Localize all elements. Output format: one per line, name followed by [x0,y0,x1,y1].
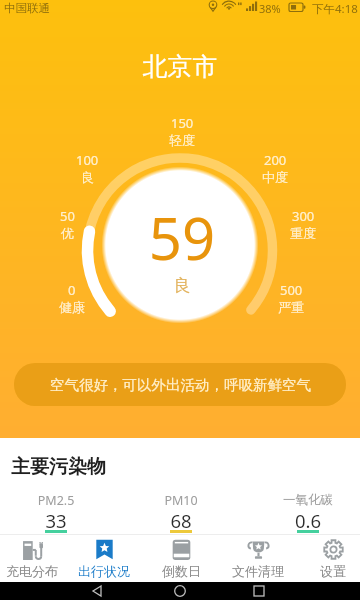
staticText: 出行状况 [78,563,130,579]
staticText: 中度 [262,169,288,185]
staticText: 严重 [278,299,304,315]
staticText: 38% [259,1,281,16]
staticText: 150 [171,114,194,132]
staticText: 500 [280,281,303,299]
staticText: 50 [60,207,75,225]
staticText: 0 [68,281,76,299]
button[interactable]: Countdown [145,534,217,582]
staticText: 北京市 [0,51,360,82]
staticText: 倒数日 [162,563,201,579]
staticText: PM10 [136,492,226,509]
button[interactable]: Charging stations [0,534,68,582]
button[interactable]: 空气很好，可以外出活动，呼吸新鲜空气 [14,363,346,406]
button[interactable]: Settings [297,534,360,582]
button[interactable]: File cleanup [222,534,294,582]
staticText: 设置 [320,563,346,579]
staticText: 59 [2,198,360,277]
button[interactable]: 一氧化碳 [263,492,353,534]
button[interactable]: PM10 [136,492,226,534]
button[interactable]: Travel status [68,534,140,582]
staticText: 良 [81,169,94,185]
staticText: 轻度 [169,132,195,148]
staticText: 充电分布 [6,563,58,579]
staticText: 良 [2,275,360,296]
staticText: 空气很好，可以外出活动，呼吸新鲜空气 [50,376,311,394]
staticText: 300 [292,207,315,225]
staticText: 文件清理 [232,563,284,579]
staticText: 健康 [59,299,85,315]
staticText: 0.6 [263,508,353,533]
staticText: 68 [136,508,226,533]
staticText: 100 [76,151,99,169]
staticText: 下午4:18 [312,1,358,17]
staticText: 一氧化碳 [263,492,353,508]
staticText: 重度 [290,225,316,241]
staticText: 优 [61,225,74,241]
staticText: PM2.5 [11,492,101,509]
staticText: 主要污染物 [11,455,106,479]
staticText: 33 [11,508,101,533]
staticText: 中国联通 [4,1,50,15]
button[interactable]: PM2.5 [11,492,101,534]
staticText: 200 [264,151,287,169]
